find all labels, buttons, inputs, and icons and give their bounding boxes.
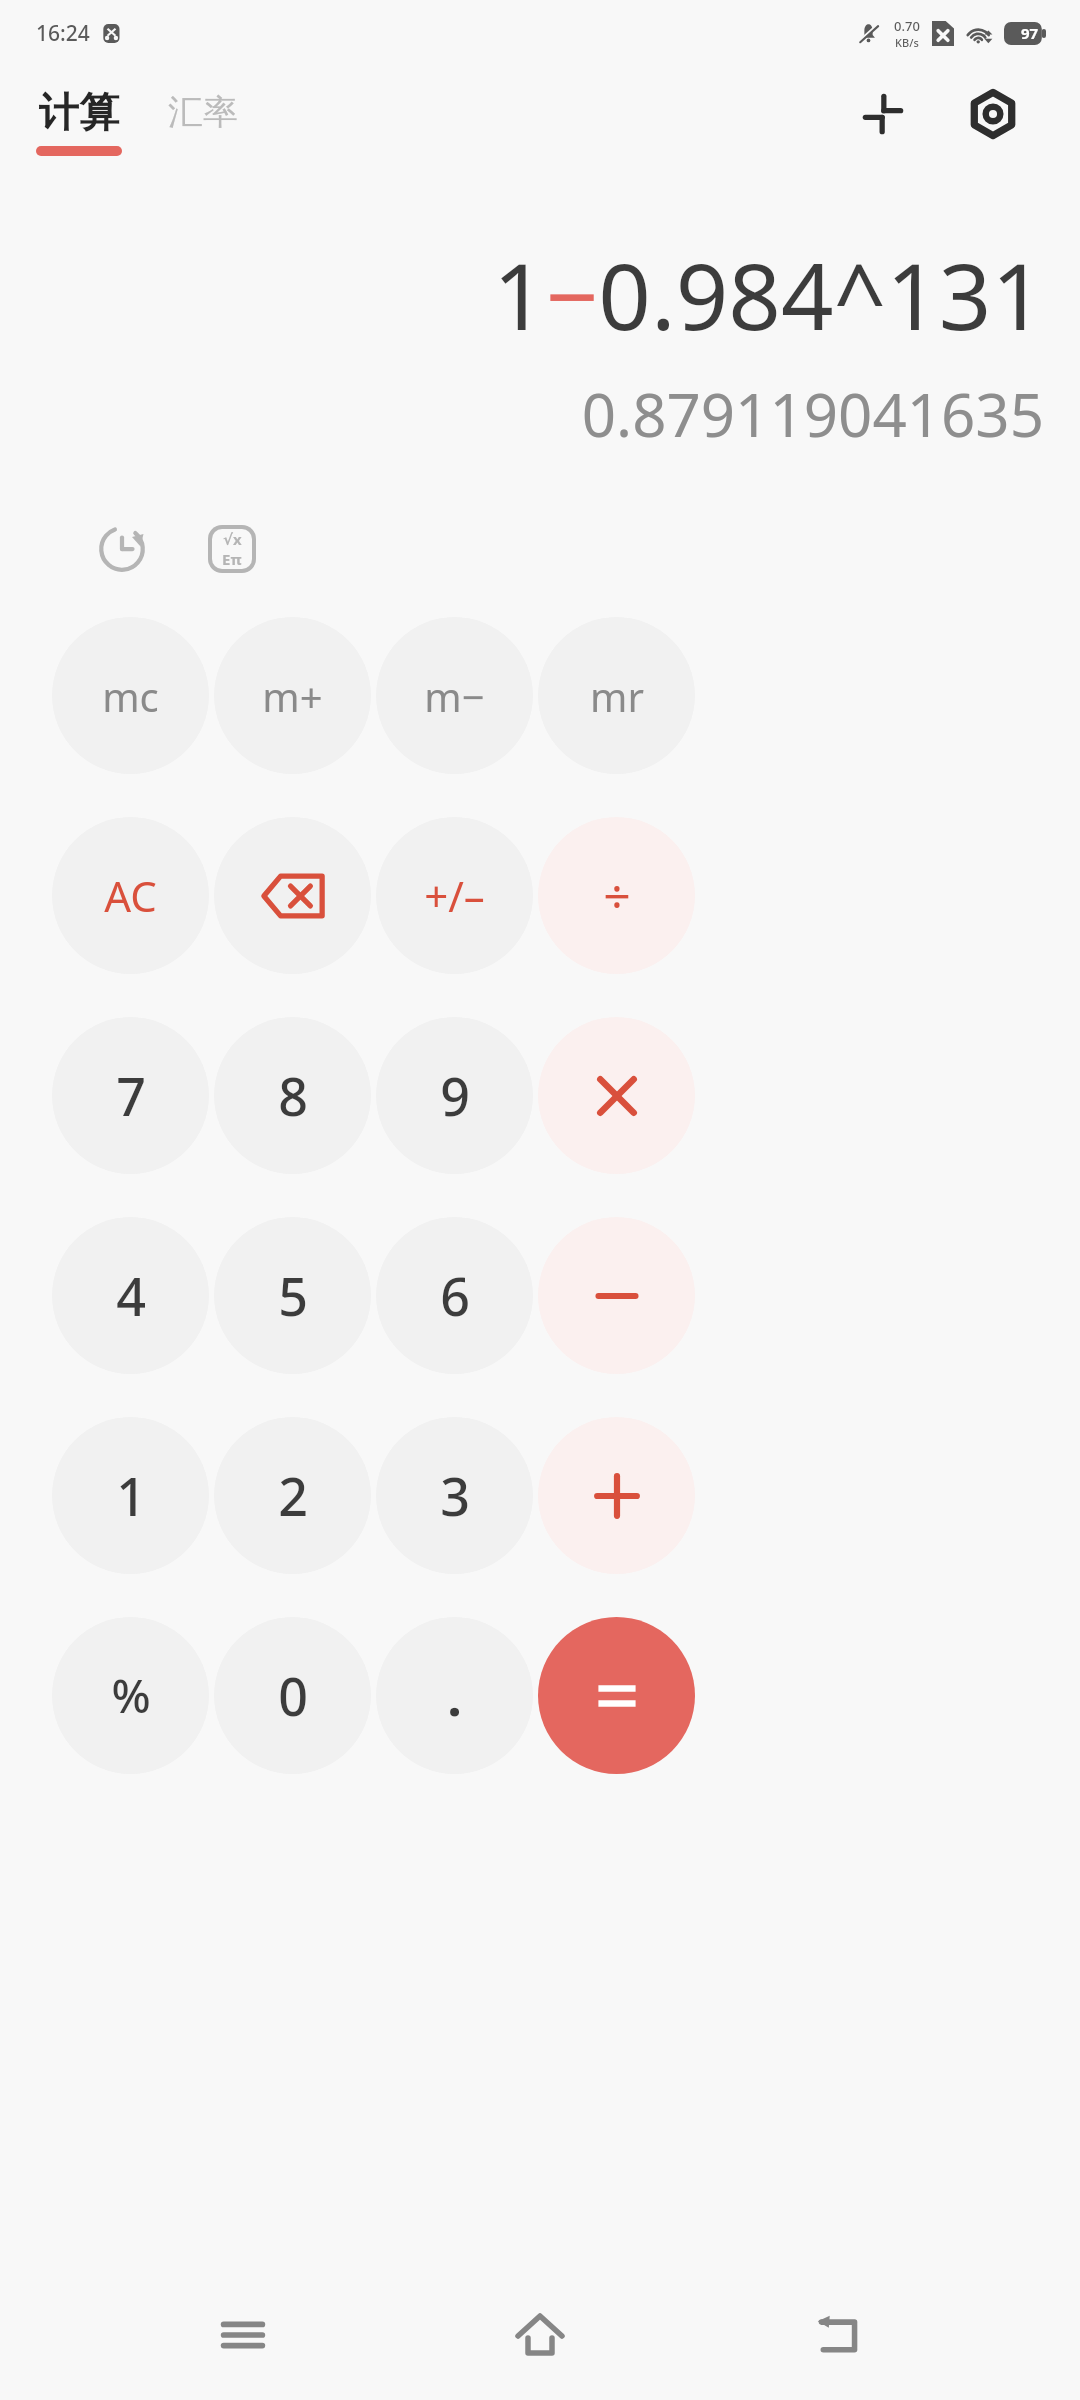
staticText: 6: [440, 1260, 470, 1331]
staticText: m−: [424, 669, 485, 723]
button[interactable]: mc: [52, 617, 209, 774]
button[interactable]: Home: [485, 2280, 595, 2390]
button[interactable]: m−: [376, 617, 533, 774]
staticText: 1: [116, 1460, 146, 1531]
button[interactable]: 计算: [36, 87, 122, 156]
staticText: %: [111, 1664, 151, 1727]
button[interactable]: 6: [376, 1217, 533, 1374]
button[interactable]: 8: [214, 1017, 371, 1174]
button[interactable]: Equals: [538, 1617, 695, 1774]
staticText: 0.70: [894, 17, 920, 35]
button[interactable]: 汇率: [168, 90, 238, 153]
button[interactable]: 7: [52, 1017, 209, 1174]
staticText: 5: [278, 1260, 308, 1331]
button[interactable]: 2: [214, 1417, 371, 1574]
button[interactable]: 5: [214, 1217, 371, 1374]
button[interactable]: Recent apps: [188, 2280, 298, 2390]
staticText: 8: [278, 1060, 308, 1131]
staticText: +/–: [424, 867, 485, 924]
staticText: 计算: [39, 87, 119, 137]
staticText: 1−0.984^131: [493, 232, 1044, 357]
staticText: 0: [278, 1660, 308, 1731]
staticText: .: [447, 1660, 462, 1731]
button[interactable]: AC: [52, 817, 209, 974]
button[interactable]: Add: [538, 1417, 695, 1574]
staticText: ÷: [603, 863, 631, 928]
staticText: KB/s: [895, 35, 919, 50]
button[interactable]: 9: [376, 1017, 533, 1174]
button[interactable]: 0: [214, 1617, 371, 1774]
button[interactable]: Collapse: [846, 77, 920, 151]
button[interactable]: Subtract: [538, 1217, 695, 1374]
button[interactable]: +/–: [376, 817, 533, 974]
button[interactable]: mr: [538, 617, 695, 774]
staticText: mr: [590, 669, 644, 723]
button[interactable]: Multiply: [538, 1017, 695, 1174]
staticText: 3: [440, 1460, 470, 1531]
staticText: 4: [116, 1260, 146, 1331]
button[interactable]: 1: [52, 1417, 209, 1574]
staticText: 2: [278, 1460, 308, 1531]
staticText: 9: [440, 1060, 470, 1131]
staticText: √x: [223, 529, 242, 549]
button[interactable]: %: [52, 1617, 209, 1774]
button[interactable]: Backspace: [214, 817, 371, 974]
button[interactable]: m+: [214, 617, 371, 774]
staticText: mc: [102, 669, 159, 723]
button[interactable]: ÷: [538, 817, 695, 974]
staticText: 97: [1021, 23, 1039, 43]
button[interactable]: .: [376, 1617, 533, 1774]
button[interactable]: Scientific functions: [194, 511, 270, 587]
button[interactable]: 3: [376, 1417, 533, 1574]
staticText: 7: [116, 1060, 146, 1131]
button[interactable]: 4: [52, 1217, 209, 1374]
staticText: m+: [262, 669, 323, 723]
button[interactable]: History: [84, 511, 160, 587]
staticText: 16:24: [36, 19, 90, 48]
staticText: AC: [104, 867, 157, 924]
button[interactable]: Settings: [956, 77, 1030, 151]
staticText: 0.879119041635: [581, 373, 1044, 455]
staticText: Eπ: [222, 549, 242, 569]
button[interactable]: Back: [783, 2280, 893, 2390]
staticText: 汇率: [168, 90, 238, 134]
